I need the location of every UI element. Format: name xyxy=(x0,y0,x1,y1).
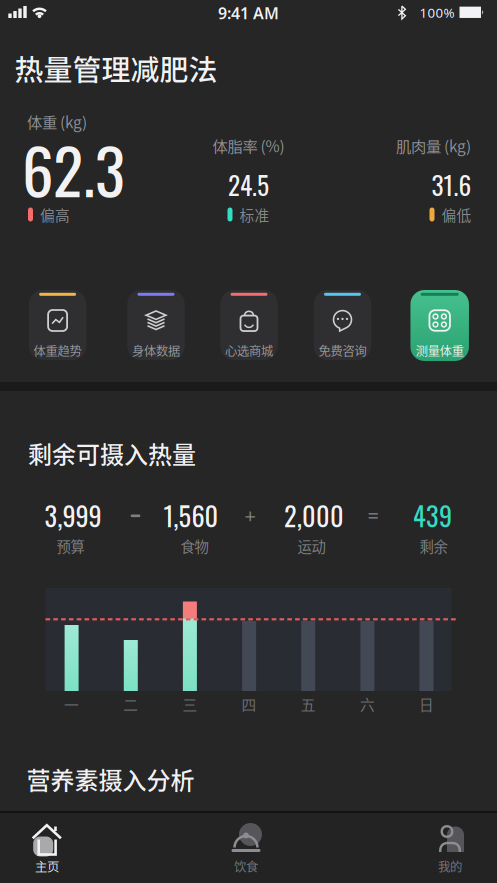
button[interactable]: 我的 xyxy=(415,813,485,881)
staticText: 运动 xyxy=(297,536,325,556)
staticText: 二 xyxy=(123,693,138,715)
staticText: 标准 xyxy=(239,204,269,225)
staticText: 主页 xyxy=(35,857,59,875)
staticText: 偏高 xyxy=(40,204,70,225)
staticText: 心选商城 xyxy=(225,342,273,359)
button[interactable]: 心选商城 xyxy=(220,290,278,360)
staticText: 预算 xyxy=(56,536,84,556)
staticText: 饮食 xyxy=(234,857,258,875)
staticText: 100% xyxy=(419,4,454,21)
button[interactable]: 饮食 xyxy=(211,813,281,881)
staticText: 五 xyxy=(301,693,316,715)
staticText: 体脂率 (%) xyxy=(212,134,284,157)
staticText: 9:41 AM xyxy=(218,2,279,24)
button[interactable]: 体重趋势 xyxy=(29,290,86,360)
staticText: 439 xyxy=(413,496,452,535)
staticText: 3,999 xyxy=(44,496,101,535)
staticText: 身体数据 xyxy=(132,342,180,359)
staticText: 营养素摄入分析 xyxy=(26,762,194,796)
staticText: 食物 xyxy=(180,536,208,556)
staticText: 一 xyxy=(64,693,79,715)
staticText: 体重 (kg) xyxy=(27,110,87,133)
staticText: + xyxy=(244,502,255,529)
staticText: 31.6 xyxy=(431,166,471,203)
staticText: 2,000 xyxy=(284,496,344,535)
staticText: 肌肉量 (kg) xyxy=(396,134,471,157)
button[interactable]: 身体数据 xyxy=(127,290,185,360)
staticText: 测量体重 xyxy=(416,342,464,359)
staticText: 日 xyxy=(419,693,434,715)
staticText: 偏低 xyxy=(441,204,471,225)
button[interactable]: 免费咨询 xyxy=(314,290,371,360)
staticText: 六 xyxy=(360,693,375,715)
button[interactable]: 主页 xyxy=(12,813,82,881)
staticText: 24.5 xyxy=(228,166,269,203)
button[interactable]: 测量体重 xyxy=(410,290,469,361)
staticText: 剩余可摄入热量 xyxy=(28,436,196,471)
staticText: 62.3 xyxy=(22,123,125,215)
staticText: 热量管理减肥法 xyxy=(14,47,217,89)
staticText: 我的 xyxy=(438,857,462,875)
staticText: = xyxy=(367,502,378,529)
staticText: 1,560 xyxy=(163,496,218,535)
staticText: 剩余 xyxy=(419,536,447,556)
staticText: 免费咨询 xyxy=(318,342,366,359)
staticText: 四 xyxy=(242,693,257,715)
staticText: 体重趋势 xyxy=(34,342,82,359)
staticText: 三 xyxy=(182,693,197,715)
